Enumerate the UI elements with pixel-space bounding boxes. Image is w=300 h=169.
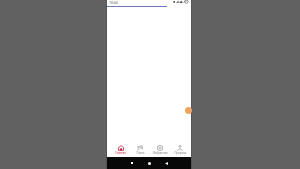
staticText: Профиль — [174, 151, 187, 155]
button[interactable]: Add — [185, 107, 192, 114]
button[interactable]: Избранное — [150, 141, 170, 157]
staticText: Главная — [115, 151, 126, 155]
button[interactable]: Главная — [111, 141, 130, 157]
button[interactable]: Back — [165, 162, 168, 165]
staticText: Поиск — [136, 151, 145, 155]
staticText: Избранное — [153, 151, 168, 155]
button[interactable]: Поиск — [130, 141, 150, 157]
button[interactable]: Профиль — [170, 141, 190, 157]
staticText: 10:44 — [109, 0, 118, 5]
button[interactable]: Home — [148, 162, 151, 165]
